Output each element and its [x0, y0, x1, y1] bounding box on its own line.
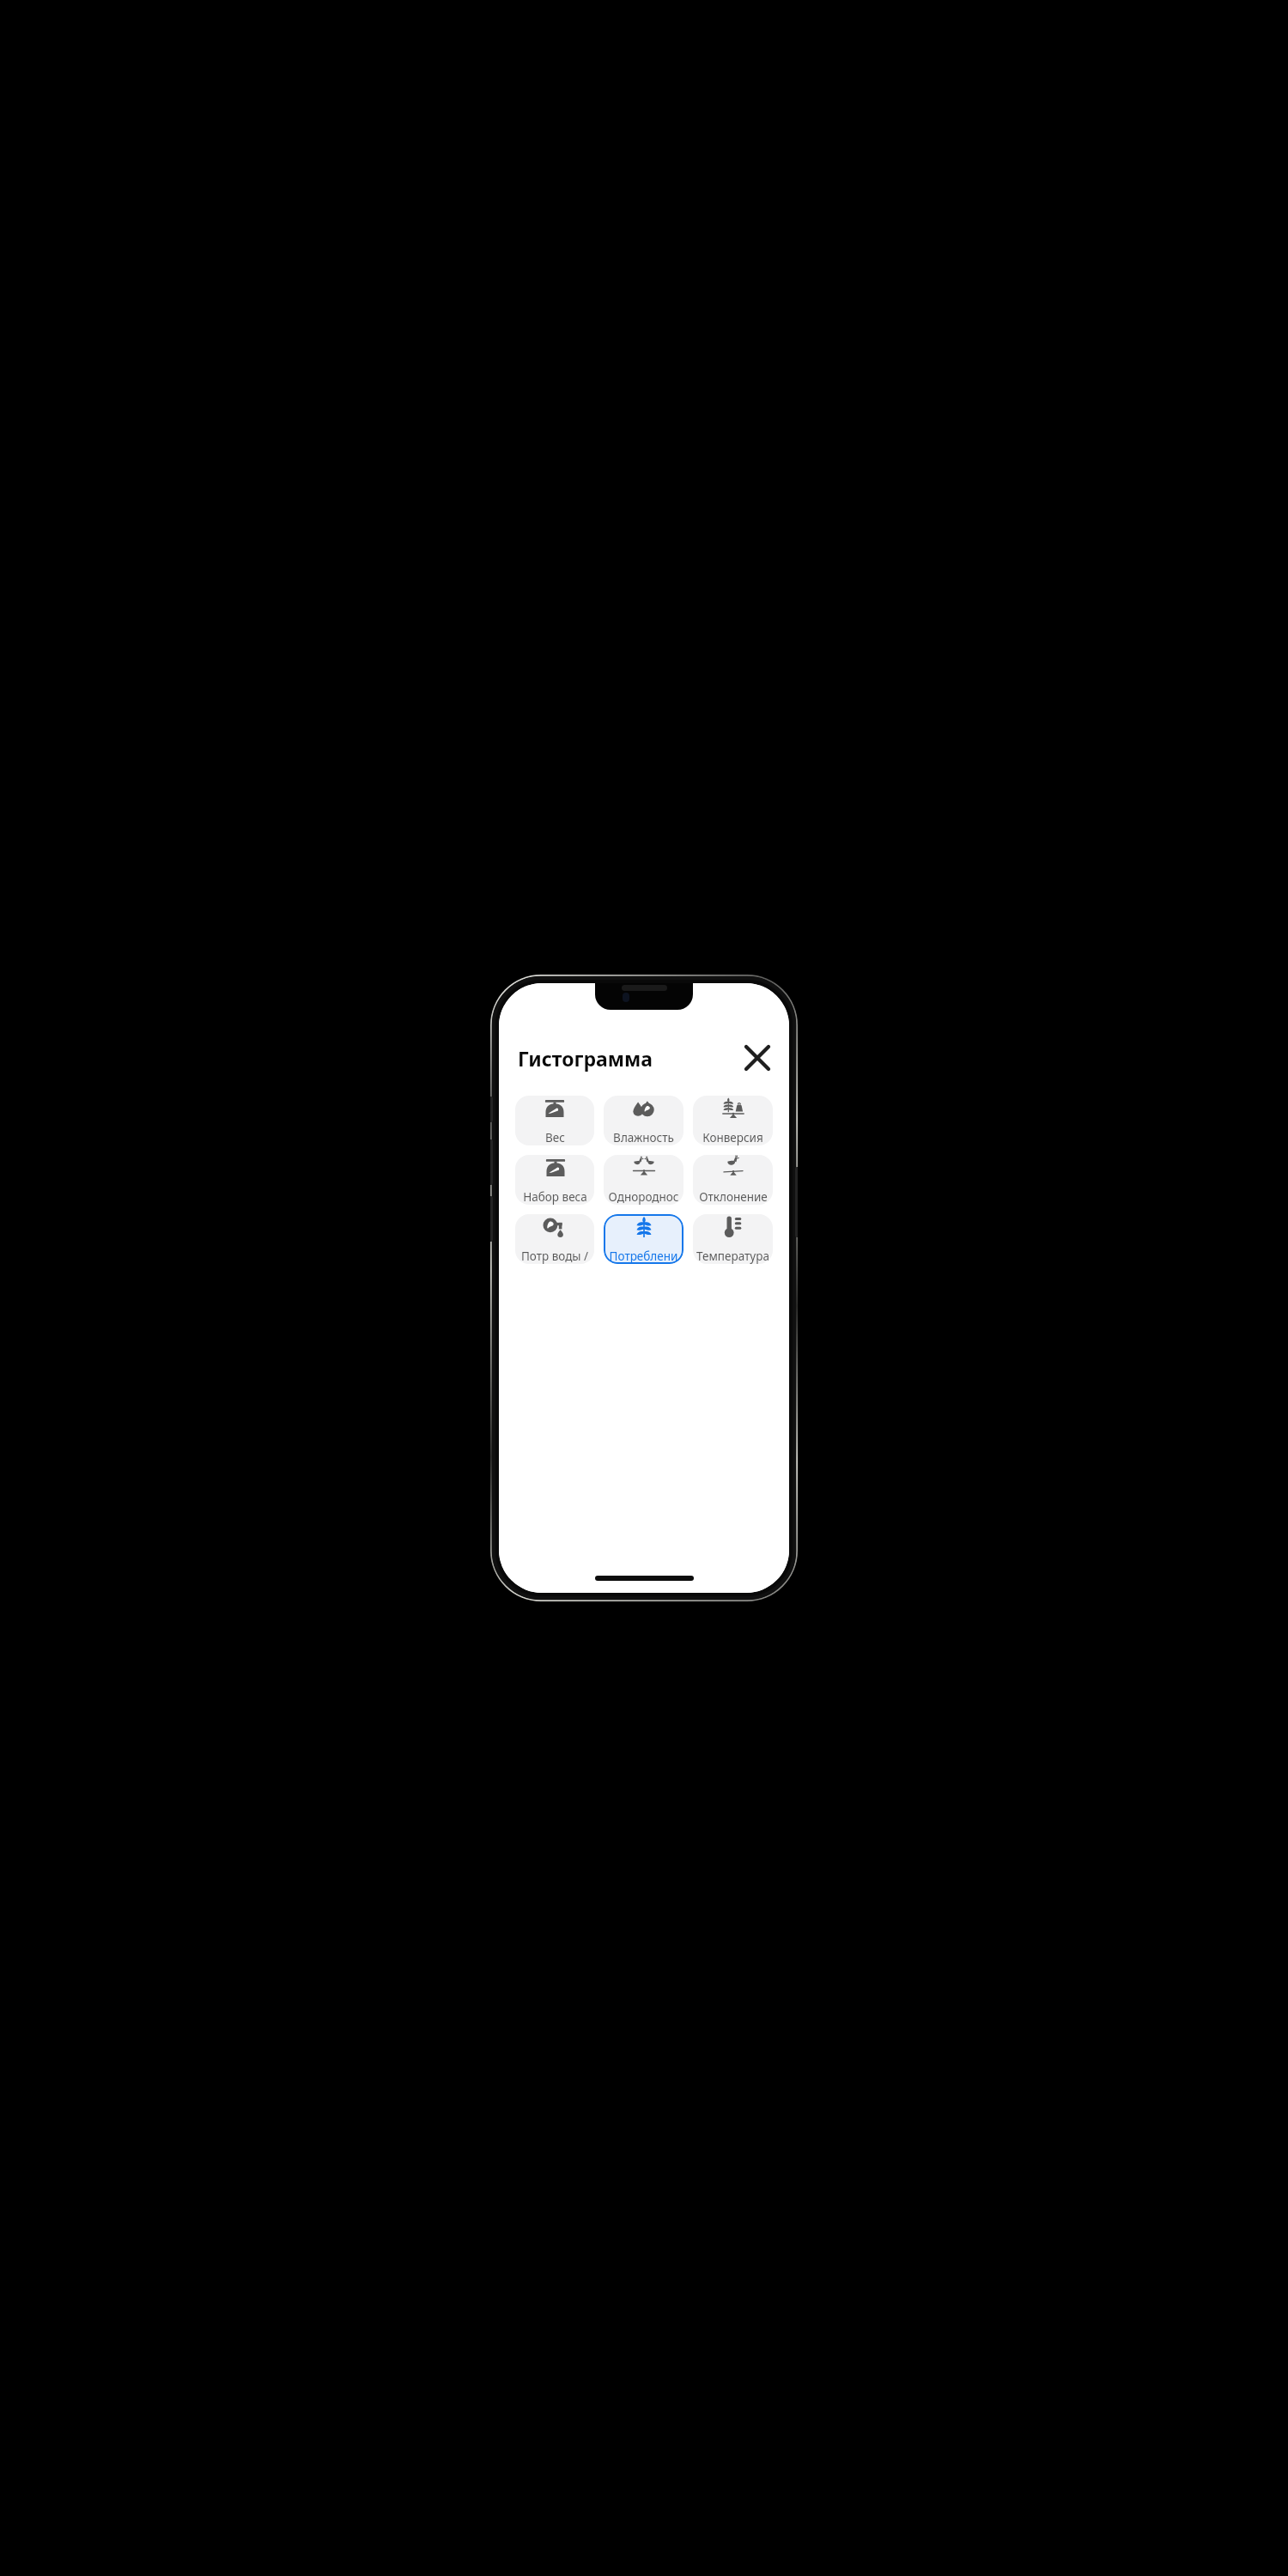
button[interactable]: Вес: [515, 1096, 594, 1145]
button[interactable]: Влажность: [604, 1096, 683, 1145]
staticText: Влажность: [613, 1130, 674, 1145]
button[interactable]: Отклонение: [693, 1155, 773, 1205]
button[interactable]: Закрыть: [737, 1037, 778, 1078]
staticText: Однородность: [607, 1189, 680, 1205]
button[interactable]: Температура: [693, 1214, 773, 1264]
staticText: Набор веса: [523, 1189, 587, 1205]
staticText: Гистограмма: [518, 1045, 653, 1072]
staticText: Отклонение: [699, 1189, 768, 1205]
staticText: Температура: [696, 1249, 769, 1264]
button[interactable]: Потребление корма / гол: [604, 1214, 683, 1264]
staticText: Потр воды / 1000 Гол: [519, 1249, 591, 1264]
staticText: Потребление корма / гол: [607, 1249, 680, 1264]
button[interactable]: Конверсия корма: [693, 1096, 773, 1145]
button[interactable]: Однородность: [604, 1155, 683, 1205]
button[interactable]: Набор веса: [515, 1155, 594, 1205]
button[interactable]: Потр воды / 1000 Гол: [515, 1214, 594, 1264]
staticText: Конверсия корма: [696, 1130, 769, 1145]
staticText: Вес: [545, 1130, 565, 1145]
